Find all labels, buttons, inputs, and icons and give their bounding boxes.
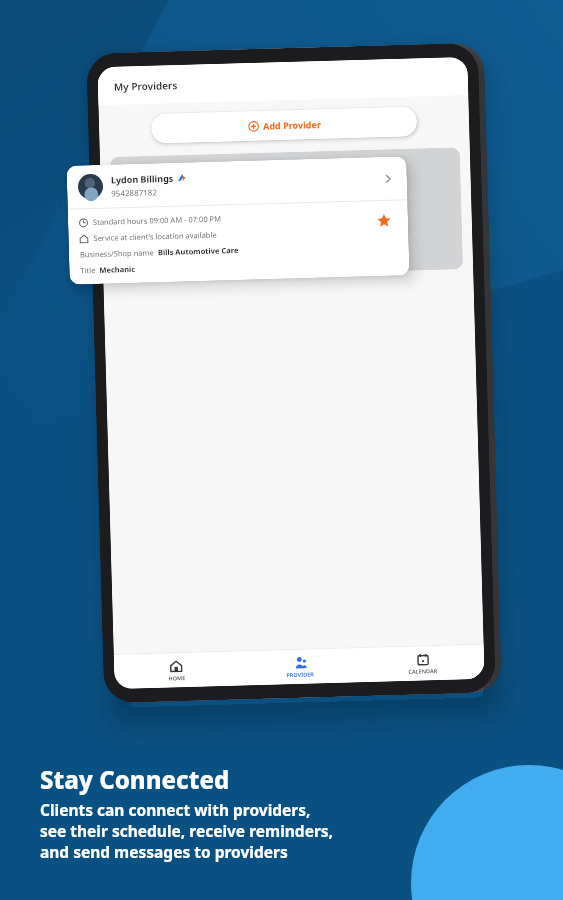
staticText: PROVIDER	[286, 670, 314, 678]
staticText: Clients can connect with providers,	[40, 799, 311, 820]
staticText: Title	[80, 265, 99, 275]
staticText: Stay Connected	[40, 763, 230, 796]
staticText: Service at client's location available	[93, 230, 217, 243]
staticText: Mechanic	[99, 264, 135, 275]
button[interactable]: HOME	[114, 652, 239, 689]
staticText: Bills Automotive Care	[158, 245, 239, 257]
staticText: see their schedule, receive reminders,	[40, 820, 334, 841]
staticText: My Providers	[114, 78, 178, 94]
staticText: Lydon Billings	[111, 172, 174, 186]
staticText: Add Provider	[263, 118, 321, 132]
button[interactable]: Add Provider	[151, 106, 417, 144]
button[interactable]: Favourite provider	[374, 211, 394, 231]
button[interactable]: Lydon Billings	[66, 156, 410, 285]
button[interactable]: Open provider details	[380, 171, 396, 187]
staticText: and send messages to providers	[40, 841, 288, 862]
staticText: CALENDAR	[408, 667, 437, 675]
staticText: 9542887182	[111, 186, 157, 198]
button[interactable]: CALENDAR	[361, 645, 485, 682]
staticText: Business/Shop name	[80, 247, 158, 259]
staticText: Standard hours 09:00 AM - 07:00 PM	[93, 213, 221, 227]
staticText: HOME	[168, 674, 186, 682]
button[interactable]: PROVIDER	[238, 648, 362, 686]
